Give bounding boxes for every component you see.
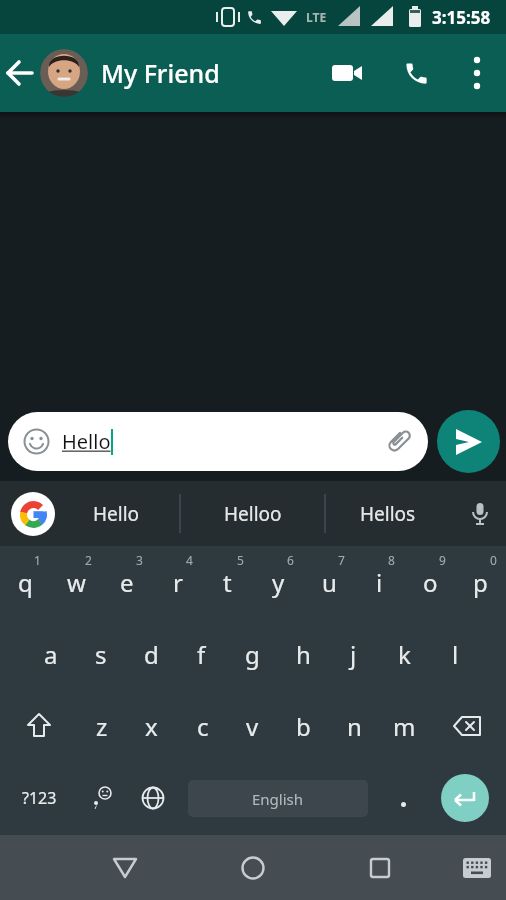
- button[interactable]: y: [253, 546, 304, 618]
- staticText: l: [452, 638, 459, 671]
- button[interactable]: u: [304, 546, 355, 618]
- button[interactable]: [380, 34, 452, 112]
- staticText: 3:15:58: [432, 6, 491, 29]
- staticText: w: [67, 566, 86, 599]
- staticText: My Friend: [101, 56, 220, 90]
- staticText: x: [145, 710, 158, 743]
- button[interactable]: j: [328, 618, 379, 690]
- staticText: j: [350, 638, 357, 671]
- button[interactable]: z: [76, 690, 127, 762]
- button[interactable]: [40, 49, 88, 97]
- staticText: Hello: [62, 428, 111, 455]
- button[interactable]: [128, 762, 178, 834]
- button[interactable]: b: [278, 690, 329, 762]
- staticText: v: [246, 710, 259, 743]
- staticText: 0: [490, 552, 497, 568]
- staticText: m: [393, 710, 416, 743]
- button[interactable]: h: [278, 618, 329, 690]
- staticText: ?123: [22, 787, 57, 809]
- button[interactable]: [384, 428, 412, 456]
- staticText: 6: [287, 552, 294, 568]
- staticText: q: [18, 566, 33, 599]
- staticText: s: [95, 638, 107, 671]
- staticText: Hellos: [360, 501, 416, 527]
- staticText: y: [272, 566, 285, 599]
- button[interactable]: Helloo: [195, 481, 311, 546]
- staticText: n: [347, 710, 362, 743]
- button[interactable]: d: [126, 618, 177, 690]
- staticText: LTE: [306, 9, 327, 25]
- button[interactable]: [436, 690, 498, 762]
- button[interactable]: g: [227, 618, 278, 690]
- button[interactable]: o: [405, 546, 456, 618]
- staticText: 7: [338, 552, 345, 568]
- button[interactable]: [441, 774, 489, 822]
- staticText: t: [223, 566, 232, 599]
- staticText: 5: [237, 552, 244, 568]
- staticText: 9: [439, 552, 446, 568]
- button[interactable]: [8, 690, 70, 762]
- button[interactable]: l: [430, 618, 481, 690]
- button[interactable]: [437, 410, 500, 473]
- button[interactable]: [378, 762, 428, 834]
- staticText: 4: [186, 552, 193, 568]
- staticText: r: [173, 566, 183, 599]
- button[interactable]: k: [379, 618, 430, 690]
- staticText: i: [376, 566, 383, 599]
- button[interactable]: m: [379, 690, 430, 762]
- button[interactable]: [452, 34, 502, 112]
- button[interactable]: w: [51, 546, 102, 618]
- staticText: e: [120, 566, 134, 599]
- button[interactable]: f: [176, 618, 227, 690]
- staticText: a: [44, 638, 58, 671]
- button[interactable]: p: [455, 546, 506, 618]
- button[interactable]: Hellos: [335, 481, 440, 546]
- button[interactable]: English: [188, 780, 368, 817]
- button[interactable]: [350, 835, 410, 900]
- button[interactable]: x: [126, 690, 177, 762]
- button[interactable]: Hello: [8, 412, 428, 471]
- staticText: 2: [85, 552, 92, 568]
- button[interactable]: [11, 492, 55, 536]
- staticText: Helloo: [224, 501, 282, 527]
- button[interactable]: q: [0, 546, 51, 618]
- button[interactable]: t: [202, 546, 253, 618]
- staticText: 1: [34, 552, 41, 568]
- button[interactable]: r: [152, 546, 203, 618]
- staticText: b: [296, 710, 311, 743]
- button[interactable]: [452, 835, 502, 900]
- button[interactable]: i: [354, 546, 405, 618]
- staticText: f: [197, 638, 206, 671]
- button[interactable]: n: [329, 690, 380, 762]
- button[interactable]: s: [75, 618, 126, 690]
- button[interactable]: [316, 34, 380, 112]
- staticText: h: [296, 638, 311, 671]
- staticText: o: [423, 566, 438, 599]
- staticText: g: [245, 638, 260, 671]
- staticText: Hello: [93, 501, 140, 527]
- button[interactable]: [458, 481, 502, 546]
- button[interactable]: [0, 34, 40, 112]
- button[interactable]: [95, 835, 155, 900]
- staticText: d: [144, 638, 159, 671]
- button[interactable]: ?123: [8, 762, 70, 834]
- button[interactable]: a: [25, 618, 76, 690]
- button[interactable]: c: [177, 690, 228, 762]
- staticText: k: [398, 638, 411, 671]
- staticText: z: [96, 710, 108, 743]
- button[interactable]: Hello: [66, 481, 166, 546]
- staticText: English: [252, 789, 304, 809]
- button[interactable]: [78, 762, 128, 834]
- button[interactable]: e: [101, 546, 152, 618]
- staticText: c: [197, 710, 209, 743]
- button[interactable]: v: [227, 690, 278, 762]
- staticText: u: [322, 566, 337, 599]
- button[interactable]: [223, 835, 283, 900]
- staticText: 3: [136, 552, 143, 568]
- staticText: 8: [388, 552, 395, 568]
- staticText: p: [473, 566, 488, 599]
